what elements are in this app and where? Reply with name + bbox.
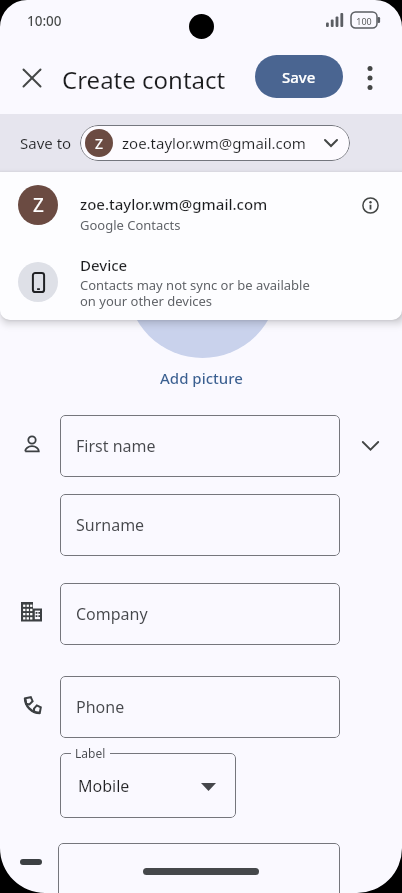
button[interactable] [354, 189, 386, 221]
button[interactable] [354, 62, 386, 94]
staticText: Phone [76, 696, 125, 718]
staticText: zoe.taylor.wm@gmail.com [80, 194, 268, 214]
staticText: First name [76, 435, 156, 457]
staticText: Z [95, 134, 104, 153]
staticText: Device [80, 255, 128, 275]
staticText: zoe.taylor.wm@gmail.com [122, 133, 306, 153]
staticText: Google Contacts [80, 216, 181, 234]
button[interactable]: Z [80, 125, 350, 161]
button[interactable] [58, 843, 340, 893]
staticText: Label [75, 745, 106, 761]
staticText: Company [76, 603, 148, 625]
button[interactable]: Surname [60, 494, 340, 556]
staticText: Contacts may not sync or be available on… [80, 276, 310, 309]
button[interactable]: Company [60, 583, 340, 645]
button[interactable]: Mobile [60, 753, 236, 818]
button[interactable]: Device [0, 248, 402, 320]
staticText: 10:00 [27, 12, 62, 30]
staticText: Mobile [78, 775, 130, 797]
button[interactable]: Phone [60, 676, 340, 738]
staticText: 100 [354, 15, 374, 27]
staticText: Add picture [160, 368, 243, 388]
button[interactable] [354, 430, 386, 462]
button[interactable]: Z [0, 172, 402, 248]
staticText: Create contact [62, 63, 226, 96]
button[interactable]: Save [255, 55, 343, 98]
button[interactable]: First name [60, 415, 340, 477]
staticText: Z [33, 192, 44, 218]
staticText: Surname [76, 514, 145, 536]
staticText: Save to [20, 133, 72, 153]
button[interactable] [16, 62, 48, 94]
button[interactable]: Add picture [156, 364, 247, 392]
staticText: Save [282, 67, 316, 87]
